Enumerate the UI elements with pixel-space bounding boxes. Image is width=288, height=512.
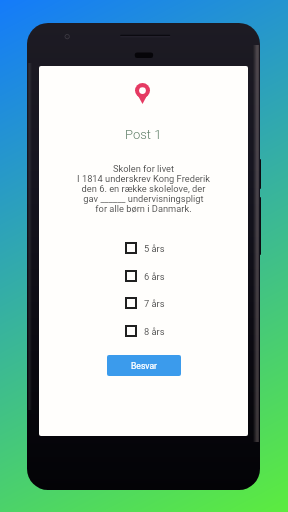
button[interactable]: 5 års <box>125 237 205 259</box>
other: Location marker <box>135 83 150 104</box>
staticText: Post 1 <box>125 127 162 142</box>
staticText: Skolen for livet I 1814 underskrev Kong … <box>77 163 210 215</box>
button[interactable]: 8 års <box>125 320 205 342</box>
staticText: 8 års <box>144 326 165 337</box>
staticText: Besvar <box>131 361 158 371</box>
staticText: 7 års <box>144 298 165 309</box>
staticText: 5 års <box>144 243 165 254</box>
staticText: 6 års <box>144 271 165 282</box>
button[interactable]: 6 års <box>125 265 205 287</box>
button[interactable]: Besvar <box>107 355 181 376</box>
button[interactable]: 7 års <box>125 292 205 314</box>
